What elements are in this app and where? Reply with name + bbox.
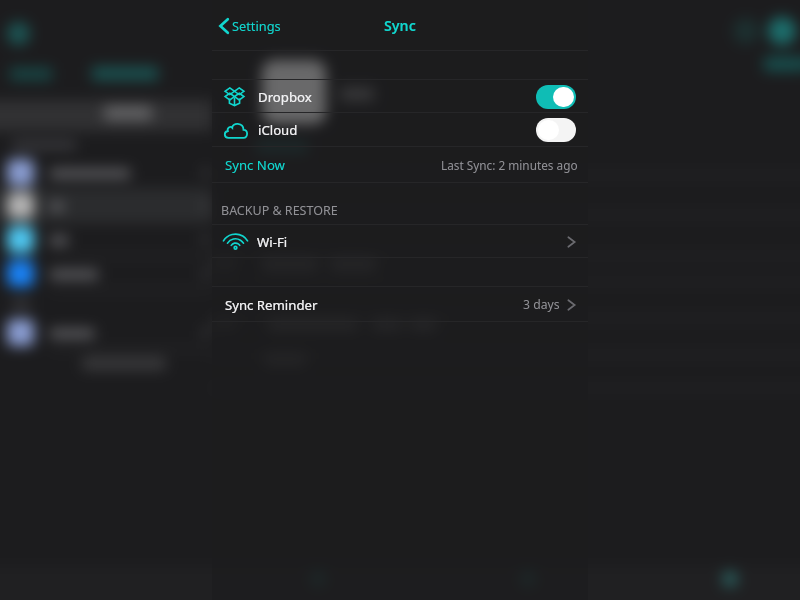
staticText: Sync Now: [225, 156, 285, 174]
button[interactable]: Sync Now: [212, 147, 588, 183]
staticText: 3 days: [523, 296, 560, 313]
button[interactable]: iCloud: [212, 113, 588, 147]
staticText: Wi-Fi: [257, 233, 288, 251]
button[interactable]: Sync Reminder: [212, 287, 588, 322]
staticText: Dropbox: [258, 88, 312, 106]
other: Dropbox: [225, 87, 244, 106]
button[interactable]: Dropbox sync enabled: [536, 85, 576, 109]
staticText: Last Sync: 2 minutes ago: [441, 157, 578, 173]
staticText: Sync Reminder: [225, 296, 318, 314]
other: Wi-Fi: [225, 233, 246, 251]
staticText: Sync: [384, 16, 416, 35]
other: Open: [567, 297, 576, 313]
staticText: Settings: [232, 17, 281, 34]
staticText: iCloud: [258, 121, 298, 139]
button[interactable]: Settings: [212, 11, 289, 40]
button[interactable]: iCloud sync disabled: [536, 118, 576, 142]
button[interactable]: Wi-Fi: [212, 225, 588, 258]
other: Open: [567, 234, 576, 250]
other: iCloud: [225, 122, 247, 139]
button[interactable]: Dropbox: [212, 80, 588, 113]
staticText: BACKUP & RESTORE: [221, 202, 338, 219]
